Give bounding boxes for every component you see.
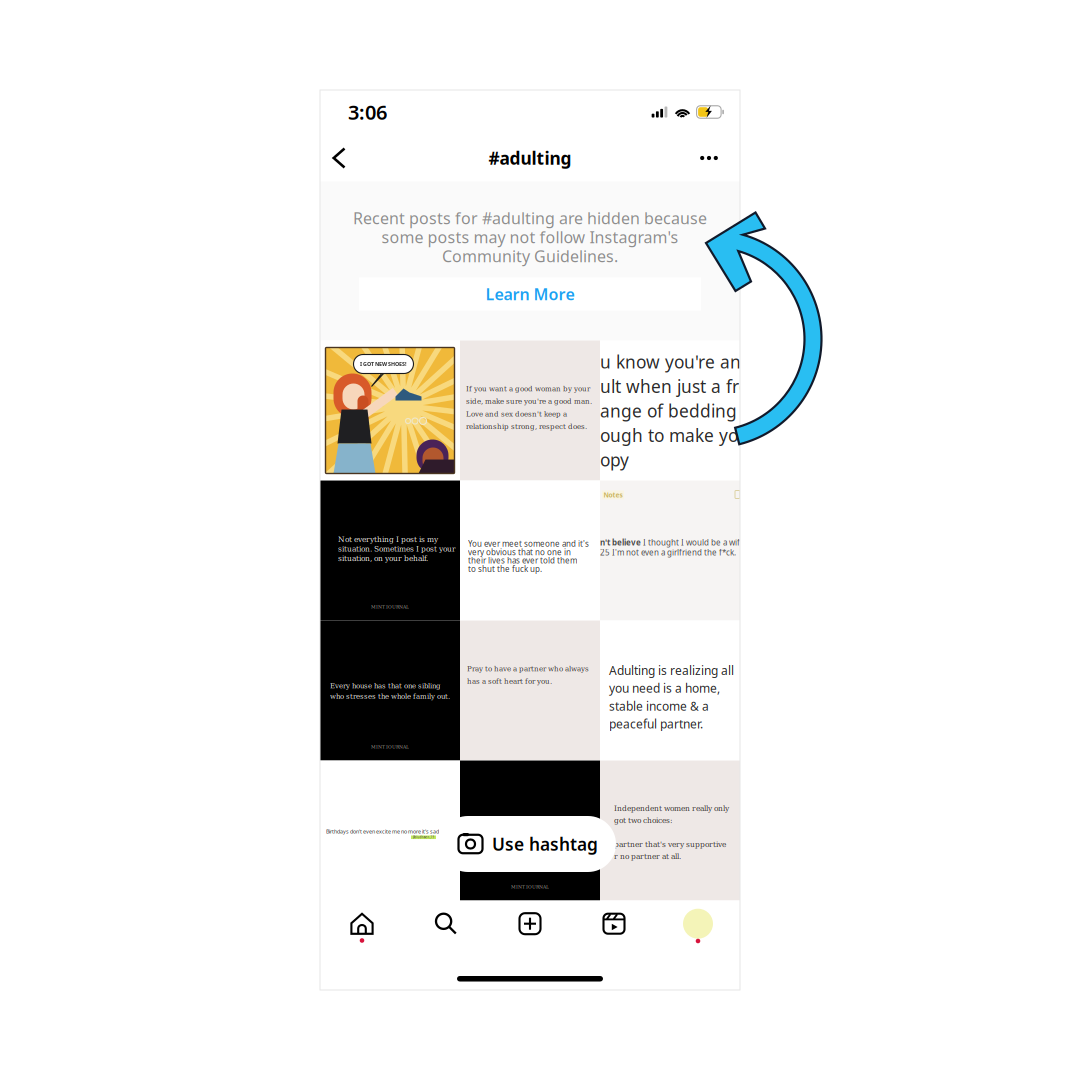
- staticText: Not everything I post is my: [338, 535, 438, 544]
- staticText: ult when just a fre: [600, 375, 749, 398]
- staticText: You ever meet someone and it's: [468, 538, 589, 549]
- staticText: Use hashtag: [492, 832, 598, 855]
- button[interactable]: Reels: [572, 903, 656, 951]
- staticText: has a soft heart for you.: [467, 677, 552, 685]
- staticText: Love and sex doesn't keep a: [466, 410, 567, 418]
- staticText: relationship strong, respect does.: [466, 422, 587, 431]
- staticText: Adulting is realizing all: [609, 662, 734, 678]
- staticText: MINT JOURNAL: [371, 744, 409, 749]
- staticText: Learn More: [485, 283, 574, 305]
- staticText: 25 I'm not even a girlfriend the f*ck.: [600, 547, 736, 558]
- staticText: stable income & a: [609, 698, 709, 714]
- button[interactable]: Home: [320, 903, 404, 951]
- staticText: ange of bedding i: [600, 399, 746, 422]
- button[interactable]: Create: [488, 903, 572, 951]
- staticText: MINT JOURNAL: [511, 884, 549, 889]
- staticText: n't believe I thought I would be a wife: [600, 537, 745, 548]
- staticText: side, make sure you're a good man.: [466, 397, 592, 405]
- staticText: you need is a home,: [609, 680, 720, 696]
- staticText: peaceful partner.: [609, 716, 703, 732]
- staticText: I GOT NEW SHOES!: [360, 360, 407, 368]
- staticText: who stresses the whole family out.: [330, 692, 450, 700]
- staticText: some posts may not follow Instagram's: [381, 226, 678, 248]
- button[interactable]: Back: [320, 137, 358, 179]
- staticText: r no partner at all.: [614, 852, 681, 861]
- button[interactable]: Use hashtag: [440, 816, 616, 872]
- button[interactable]: Search: [404, 903, 488, 951]
- staticText: Notes: [603, 490, 622, 499]
- staticText: their lives has ever told them: [468, 555, 577, 566]
- staticText: Every house has that one sibling: [330, 682, 440, 690]
- staticText: u know you're an: [600, 350, 741, 373]
- staticText: Community Guidelines.: [442, 245, 618, 267]
- staticText: Independent women really only: [614, 804, 729, 813]
- staticText: got two choices:: [614, 816, 673, 825]
- staticText: very obvious that no one in: [468, 547, 571, 557]
- staticText: Recent posts for #adulting are hidden be…: [353, 207, 707, 229]
- staticText: If you want a good woman by your: [466, 385, 590, 393]
- staticText: to shut the fuck up.: [468, 564, 542, 574]
- staticText: opy: [600, 448, 629, 471]
- staticText: situation. Sometimes I post your: [338, 545, 456, 553]
- staticText: @bludhaven_19: [412, 835, 434, 839]
- staticText: MINT JOURNAL: [371, 604, 409, 609]
- staticText: Birthdays don't even excite me no more i…: [326, 828, 439, 835]
- staticText: #adulting: [488, 146, 571, 169]
- button[interactable]: More options: [690, 137, 728, 179]
- button[interactable]: Learn More: [359, 277, 701, 310]
- staticText: 3:06: [348, 99, 387, 125]
- staticText: situation, on your behalf.: [338, 554, 428, 563]
- staticText: ough to make you: [600, 424, 749, 447]
- button[interactable]: Profile: [656, 903, 740, 951]
- staticText: partner that's very supportive: [614, 840, 726, 849]
- staticText: Pray to have a partner who always: [467, 665, 589, 673]
